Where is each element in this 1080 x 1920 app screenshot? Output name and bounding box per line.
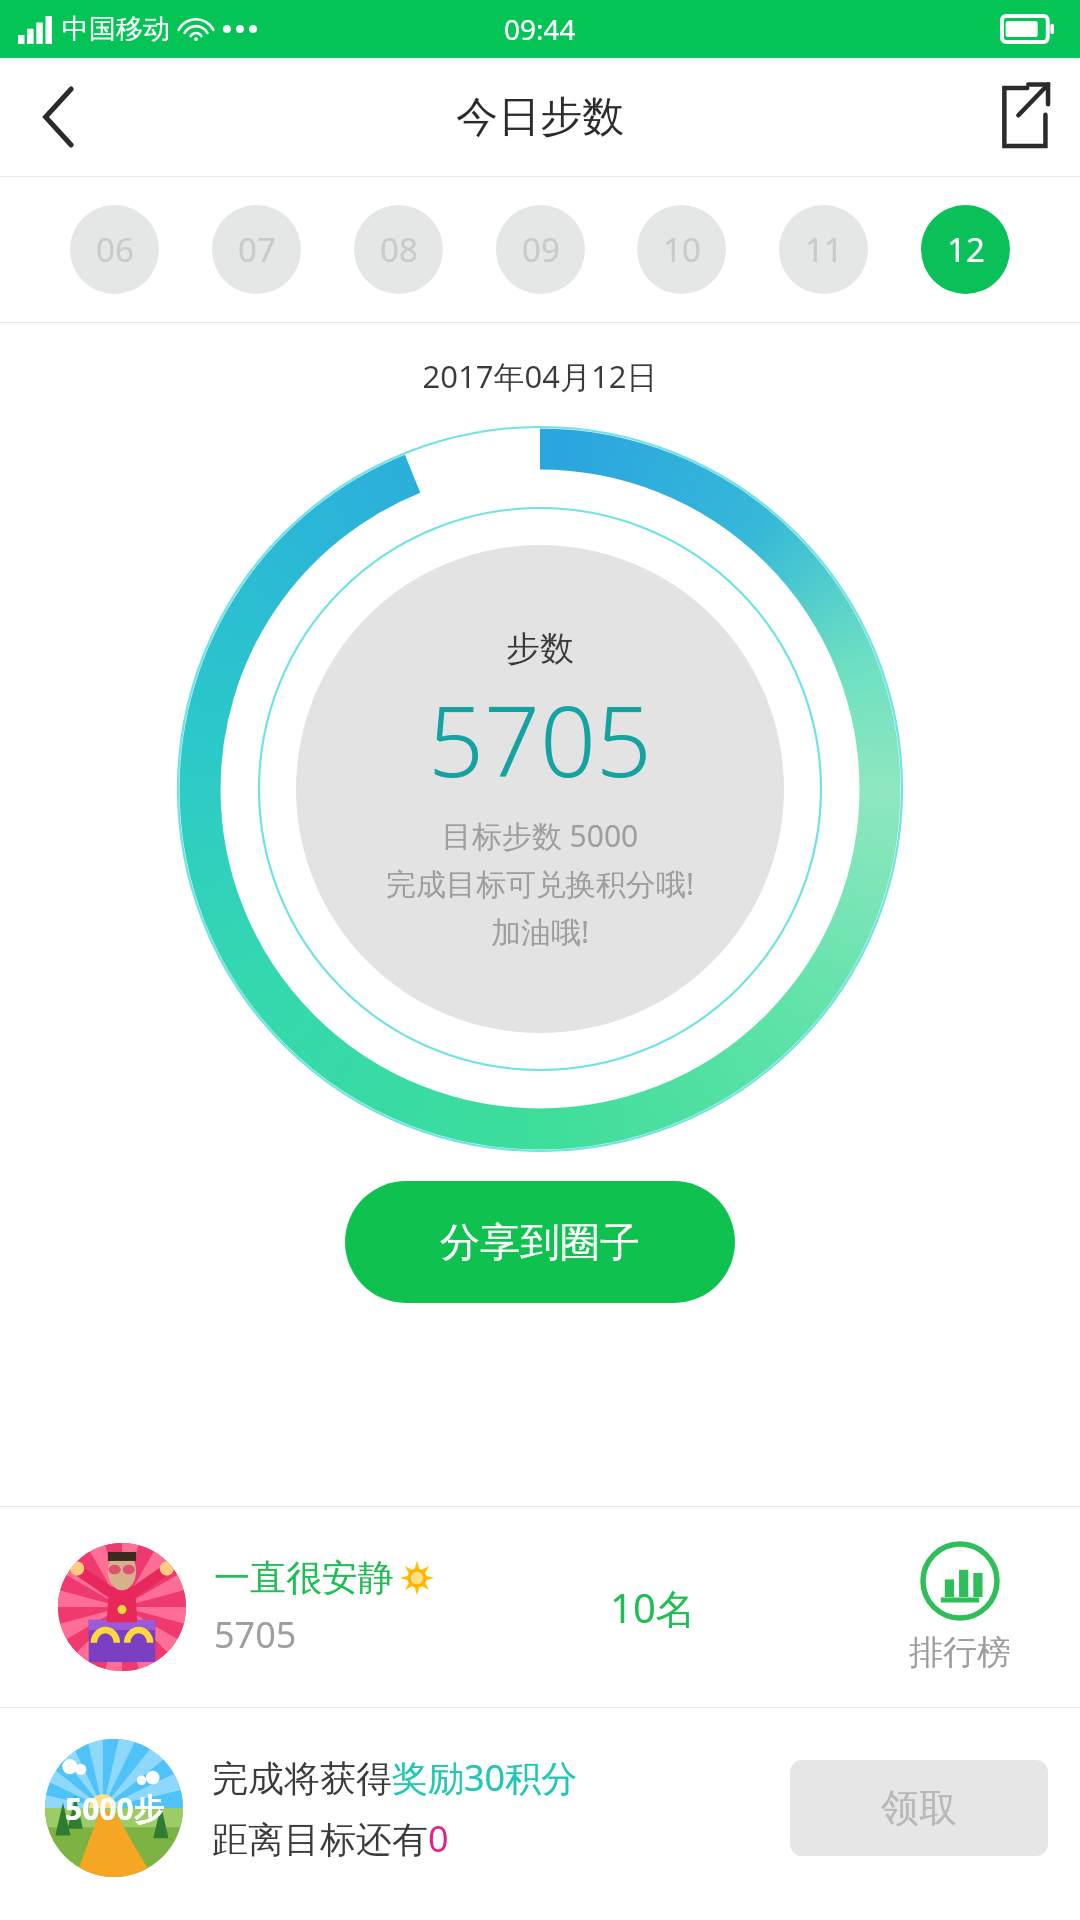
button[interactable]: 09 [496, 205, 585, 294]
staticText: 09:44 [504, 10, 576, 48]
staticText: 5000步 [65, 1788, 164, 1829]
staticText: 11 [805, 227, 843, 272]
staticText: 2017年04月12日 [0, 355, 1080, 397]
staticText: 分享到圈子 [440, 1217, 640, 1267]
staticText: 排行榜 [909, 1631, 1011, 1674]
button[interactable]: 11 [779, 205, 868, 294]
staticText: 加油哦! [0, 911, 1080, 952]
staticText: 07 [238, 227, 276, 272]
staticText: 领取 [881, 1784, 957, 1832]
staticText: 10名 [610, 1580, 696, 1635]
staticText: 10 [663, 227, 701, 272]
button[interactable]: 12 [921, 205, 1010, 294]
button[interactable]: 排行榜 [870, 1541, 1050, 1674]
staticText: 一直很安静 [214, 1555, 394, 1600]
staticText: 中国移动 [62, 12, 170, 46]
button[interactable]: 领取 [790, 1760, 1048, 1856]
button[interactable]: 08 [354, 205, 443, 294]
button[interactable]: 07 [212, 205, 301, 294]
button[interactable]: Back [0, 58, 118, 176]
staticText: 09 [522, 227, 560, 272]
staticText: 完成将获得奖励30积分 [212, 1753, 578, 1802]
staticText: 目标步数 5000 [0, 815, 1080, 856]
staticText: 5705 [214, 1610, 297, 1659]
staticText: 完成目标可兑换积分哦! [0, 863, 1080, 904]
staticText: 06 [96, 227, 134, 272]
button[interactable]: Share [962, 58, 1080, 176]
button[interactable]: 分享到圈子 [345, 1181, 735, 1303]
staticText: 步数 [506, 627, 574, 670]
button[interactable]: 5000步 [0, 1708, 1080, 1908]
staticText: 5705 [428, 672, 652, 805]
staticText: 08 [380, 227, 418, 272]
staticText: 今日步数 [456, 91, 624, 144]
staticText: 距离目标还有0 [212, 1814, 449, 1863]
button[interactable]: 一直很安静 [0, 1507, 1080, 1707]
staticText: 12 [947, 227, 985, 272]
button[interactable]: 10 [637, 205, 726, 294]
button[interactable]: 06 [70, 205, 159, 294]
